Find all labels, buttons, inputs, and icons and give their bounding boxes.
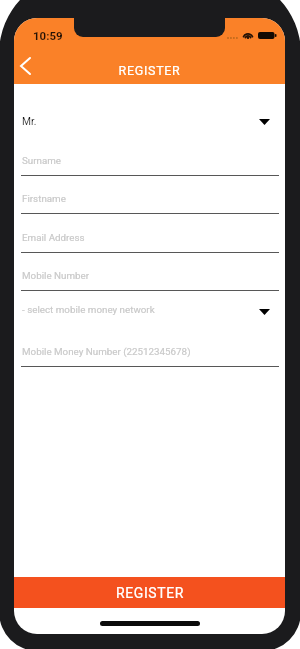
button[interactable]: Mr. (21, 110, 279, 134)
staticText: Mobile Money Number (22512345678) (22, 346, 191, 357)
button[interactable]: Surname (21, 151, 279, 176)
button[interactable]: Firstname (21, 189, 279, 214)
staticText: Mobile Number (22, 270, 90, 281)
button[interactable]: REGISTER (14, 577, 285, 608)
staticText: Email Address (22, 232, 85, 243)
staticText: Mr. (22, 115, 37, 127)
staticText: Firstname (22, 193, 66, 204)
staticText: REGISTER (14, 63, 285, 78)
staticText: 10:59 (33, 29, 63, 42)
button[interactable]: Mobile Money Number (22512345678) (21, 342, 279, 367)
button[interactable]: Email Address (21, 228, 279, 253)
button[interactable]: Back (14, 50, 41, 81)
button[interactable]: - select mobile money network (21, 300, 279, 324)
staticText: - select mobile money network (22, 304, 155, 315)
staticText: Surname (22, 155, 62, 166)
button[interactable]: Mobile Number (21, 266, 279, 291)
staticText: REGISTER (116, 585, 184, 601)
